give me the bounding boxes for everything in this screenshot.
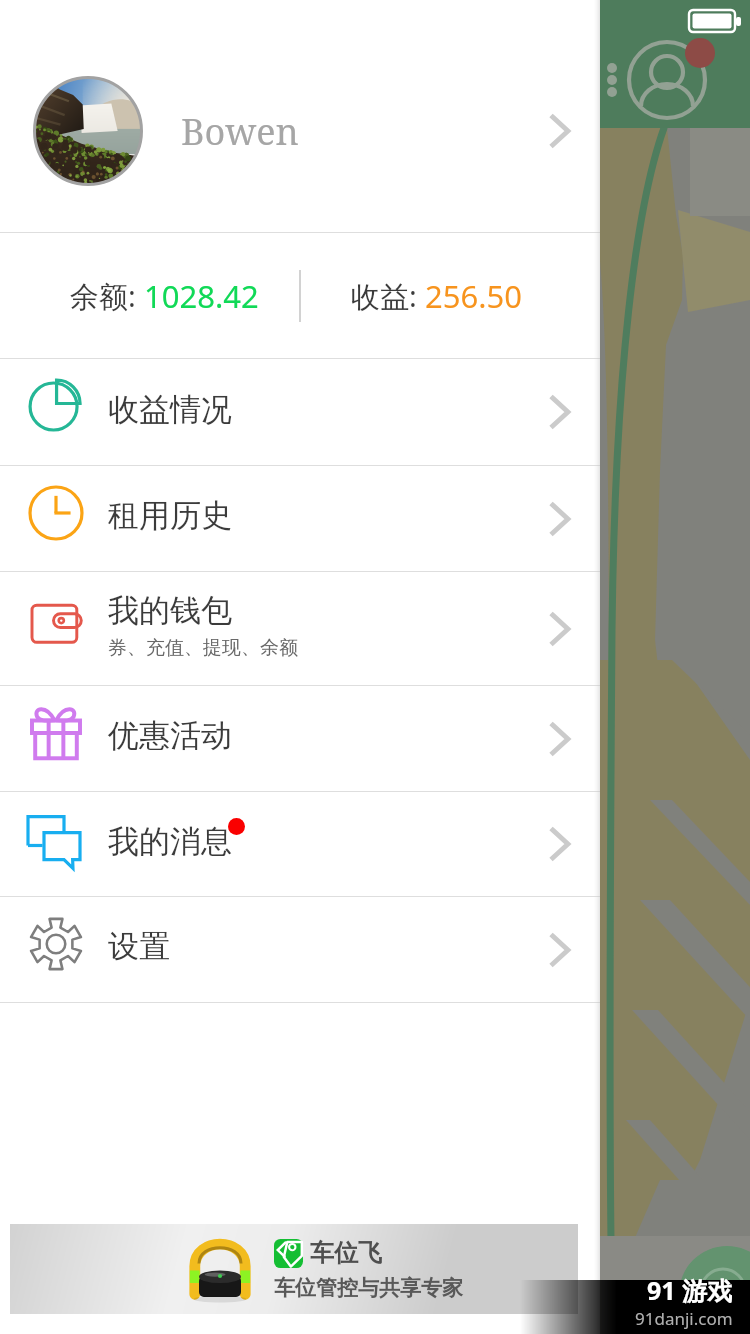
button[interactable]: Account [623, 36, 711, 124]
staticText: 91danji.com [635, 1307, 733, 1330]
button[interactable]: 我的钱包 [0, 572, 600, 685]
button[interactable]: 收益情况 [0, 359, 600, 465]
staticText: 91 游戏 [647, 1273, 733, 1307]
staticText: 优惠活动 [108, 716, 232, 755]
staticText: 设置 [108, 927, 170, 966]
staticText: 收益: [351, 276, 425, 316]
staticText: 我的消息 [108, 822, 232, 861]
staticText: 租用历史 [108, 496, 232, 535]
staticText: Bowen [181, 107, 299, 156]
button[interactable]: My location [679, 1246, 750, 1334]
staticText: 256.50 [425, 275, 522, 317]
staticText: 我的钱包 [108, 591, 232, 630]
button[interactable]: 租用历史 [0, 466, 600, 571]
button[interactable]: 优惠活动 [0, 686, 600, 791]
staticText: 车位飞 [310, 1238, 382, 1268]
staticText: 1028.42 [144, 275, 259, 317]
button[interactable]: Bowen [0, 0, 600, 232]
staticText: 余额: [70, 276, 144, 316]
staticText: 券、充值、提现、余额 [108, 636, 298, 660]
staticText: 车位管控与共享专家 [274, 1275, 463, 1301]
button[interactable]: 我的消息 [0, 792, 600, 896]
button[interactable]: 设置 [0, 897, 600, 1002]
staticText: 收益情况 [108, 390, 232, 429]
button[interactable]: 车位飞 [10, 1224, 578, 1314]
